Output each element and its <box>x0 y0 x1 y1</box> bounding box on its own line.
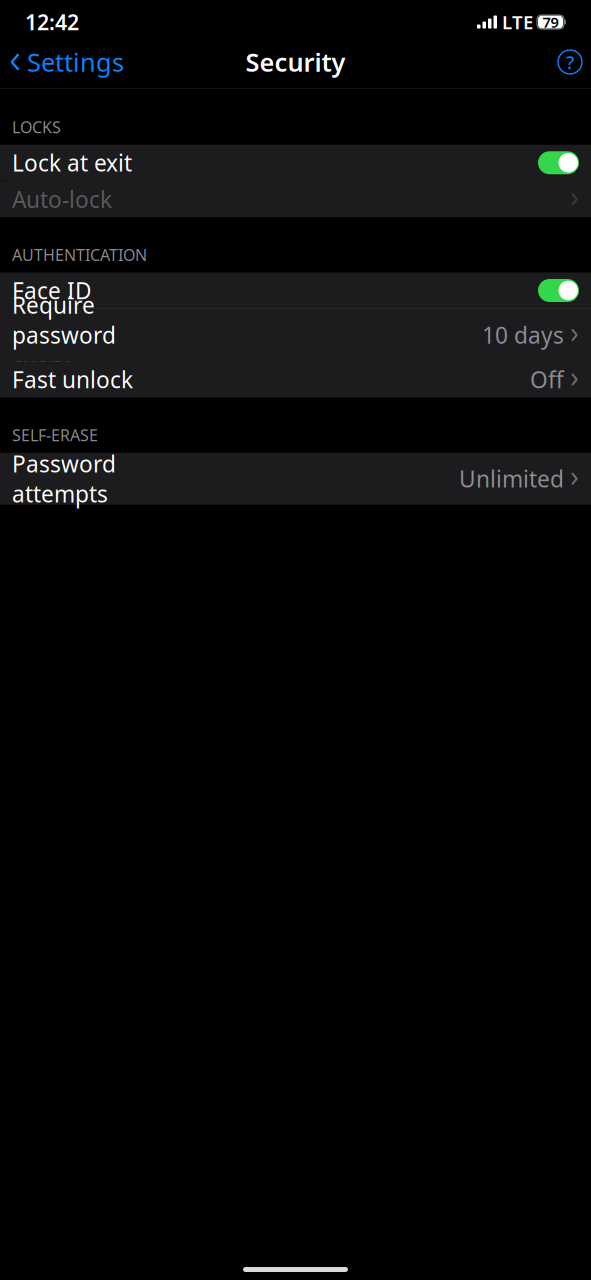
button[interactable]: Face ID <box>0 272 591 308</box>
staticText: Off <box>530 364 564 394</box>
button[interactable]: Require password every <box>0 309 591 361</box>
staticText: ? <box>566 50 574 74</box>
staticText: Require password every <box>12 290 116 380</box>
staticText: Password attempts <box>12 449 116 509</box>
staticText: Fast unlock <box>12 364 133 394</box>
button[interactable]: Fast unlock <box>0 361 591 397</box>
staticText: 10 days <box>482 320 564 350</box>
button[interactable]: Password attempts <box>0 453 591 505</box>
button[interactable]: Settings <box>9 39 124 85</box>
staticText: SELF-ERASE <box>12 424 98 446</box>
button[interactable]: Lock at exit <box>0 145 591 181</box>
staticText: Face ID <box>12 275 92 305</box>
button[interactable]: Auto-lock <box>0 181 591 217</box>
staticText: Auto-lock <box>12 184 112 214</box>
staticText: Settings <box>27 45 124 79</box>
staticText: Lock at exit <box>12 148 132 178</box>
staticText: Security <box>245 45 345 79</box>
staticText: LTE <box>502 10 533 34</box>
staticText: Unlimited <box>459 464 564 494</box>
staticText: 12:42 <box>25 8 79 36</box>
staticText: LOCKS <box>12 116 61 138</box>
button[interactable]: Help <box>558 50 582 74</box>
staticText: 79 <box>542 12 558 32</box>
staticText: AUTHENTICATION <box>12 244 147 265</box>
